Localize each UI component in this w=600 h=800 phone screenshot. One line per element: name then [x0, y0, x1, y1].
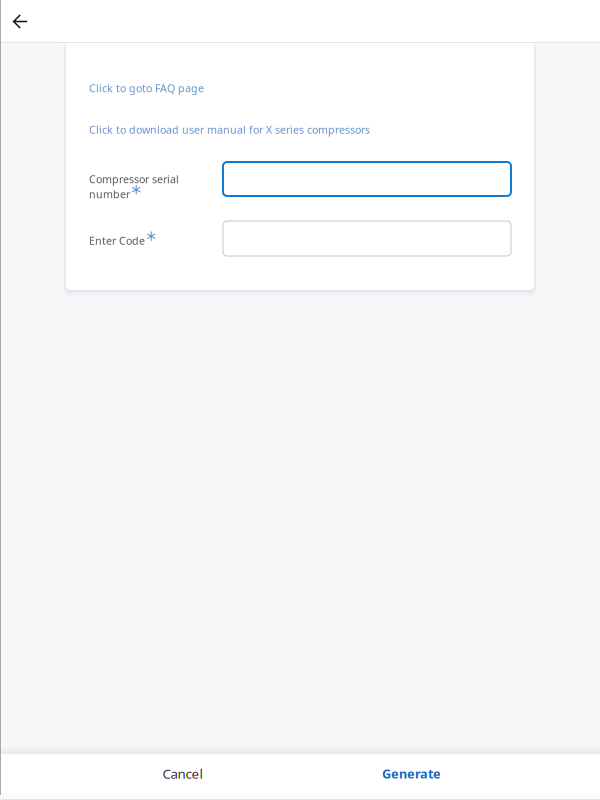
button[interactable]: Click to download user manual for X seri… — [89, 122, 389, 136]
staticText: Click to download user manual for X seri… — [89, 122, 370, 137]
staticText: Cancel — [162, 764, 202, 783]
button[interactable]: Back — [0, 0, 41, 43]
button[interactable]: Compressor serial number — [223, 162, 511, 196]
staticText: Compressor serial — [89, 172, 179, 186]
staticText: Generate — [382, 765, 441, 782]
staticText: Click to goto FAQ page — [89, 81, 204, 95]
button[interactable]: Enter Code — [223, 221, 511, 256]
staticText: number — [89, 187, 130, 201]
button[interactable]: Generate — [297, 754, 526, 793]
button[interactable]: Cancel — [68, 754, 297, 793]
staticText: Enter Code — [89, 233, 145, 248]
button[interactable]: Click to goto FAQ page — [89, 81, 289, 95]
